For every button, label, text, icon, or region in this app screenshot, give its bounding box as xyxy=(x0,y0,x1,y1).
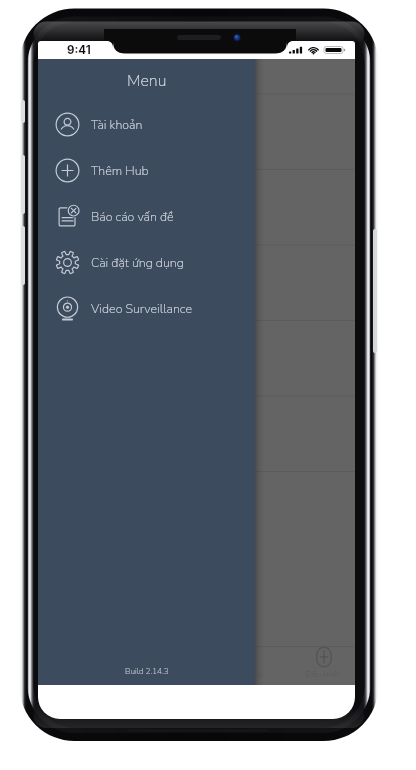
button[interactable]: Report a problem xyxy=(38,193,255,239)
staticText: 9:41 xyxy=(67,43,91,57)
button[interactable]: ảo xyxy=(229,647,292,680)
button[interactable]: Menu xyxy=(38,59,255,685)
staticText: Thêm Hub xyxy=(91,162,149,179)
button[interactable]: Tab xyxy=(166,647,229,680)
staticText: Tài khoản xyxy=(91,116,143,133)
button[interactable]: App settings xyxy=(38,239,255,285)
button[interactable]: Add hub xyxy=(38,147,255,193)
button[interactable]: Tab xyxy=(102,647,166,680)
staticText: Menu xyxy=(127,70,167,92)
button[interactable]: Điều khiển xyxy=(292,647,355,680)
button[interactable]: Video surveillance xyxy=(38,285,255,331)
staticText: Cài đặt ứng dụng xyxy=(91,254,184,271)
button[interactable]: Account xyxy=(38,101,255,147)
staticText: ảo xyxy=(257,669,265,679)
staticText: Video Surveillance xyxy=(91,300,192,317)
staticText: Build 2.14.3 xyxy=(125,666,169,677)
staticText: Báo cáo vấn đề xyxy=(91,208,174,225)
